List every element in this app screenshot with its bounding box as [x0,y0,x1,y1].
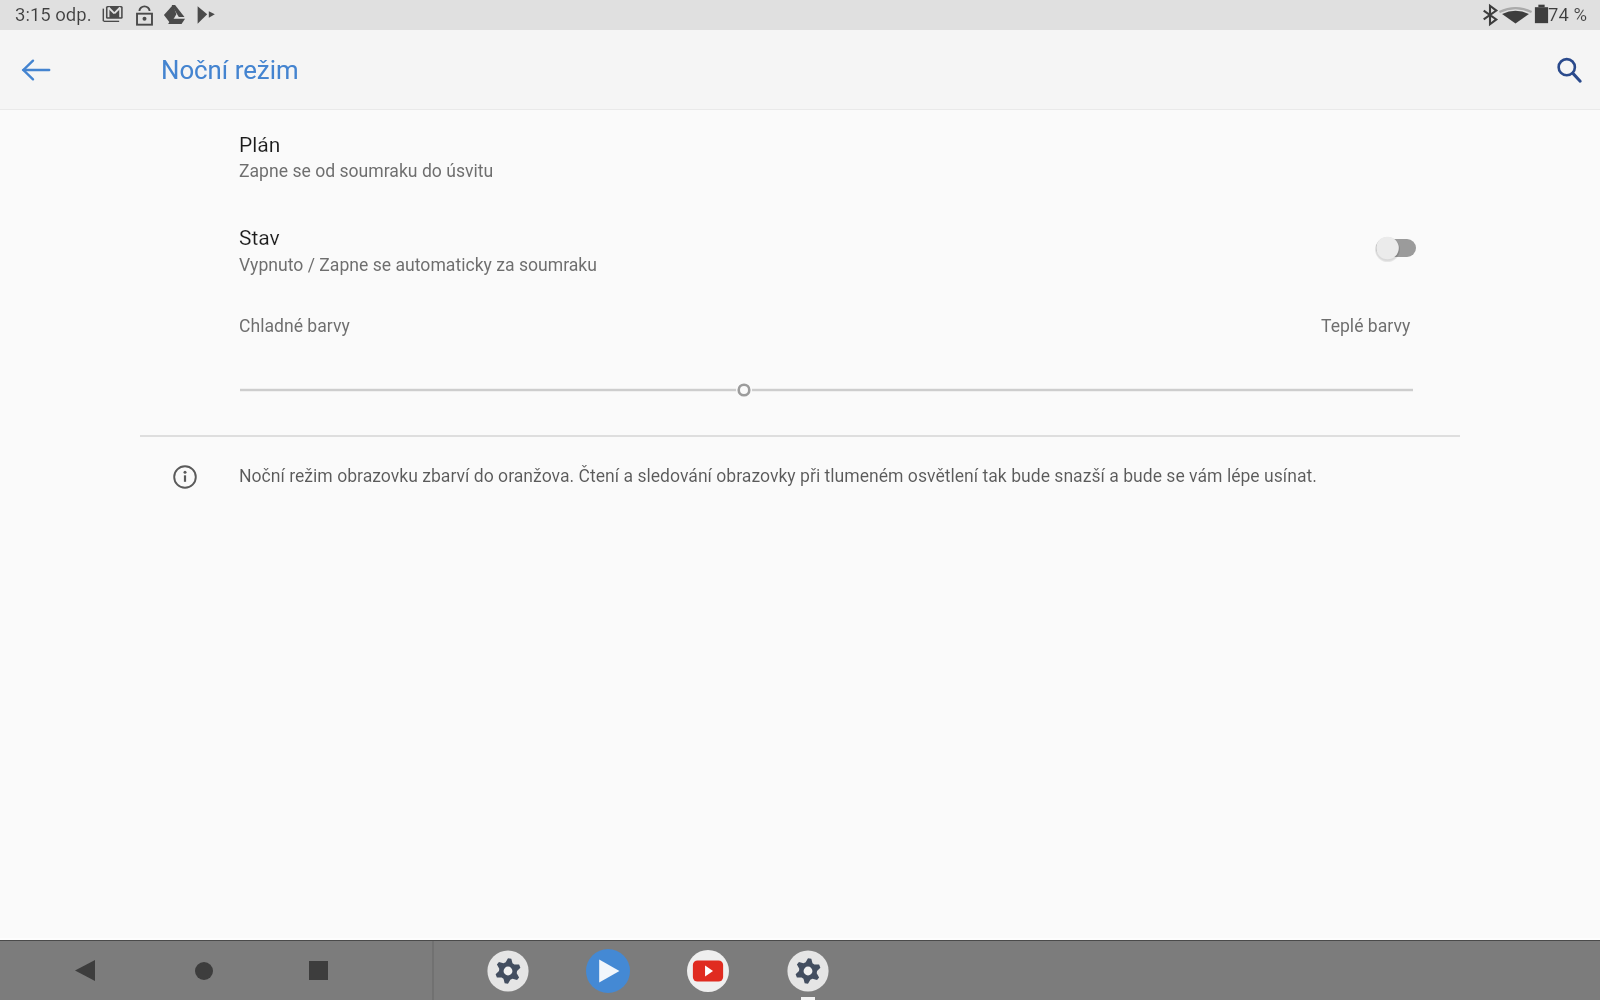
staticText: Vypnuto / Zapne se automaticky za soumra… [239,255,597,276]
button[interactable]: Plán [140,119,1460,203]
staticText: Stav [239,226,280,251]
button[interactable]: YouTube [684,941,732,1000]
button[interactable]: Back [61,941,109,1000]
staticText: Teplé barvy [1321,316,1411,337]
button[interactable]: Play [584,941,632,1000]
staticText: 3:15 odp. [15,4,92,26]
staticText: 74 % [1548,4,1587,26]
staticText: Zapne se od soumraku do úsvitu [239,161,494,182]
button[interactable]: Settings [484,941,532,1000]
button[interactable]: Settings [784,941,832,1000]
staticText: Plán [239,133,281,158]
button[interactable]: Night mode toggle [1372,231,1418,265]
staticText: Chladné barvy [239,316,350,337]
button[interactable]: Home [180,941,228,1000]
button[interactable]: Stav [140,213,1460,297]
button[interactable]: Back [14,48,58,92]
button[interactable]: Recent apps [294,941,342,1000]
button[interactable]: Search [1547,48,1591,92]
staticText: Noční režim [161,55,299,85]
staticText: Noční režim obrazovku zbarví do oranžova… [239,466,1317,487]
button[interactable]: Color temperature [220,370,1433,410]
